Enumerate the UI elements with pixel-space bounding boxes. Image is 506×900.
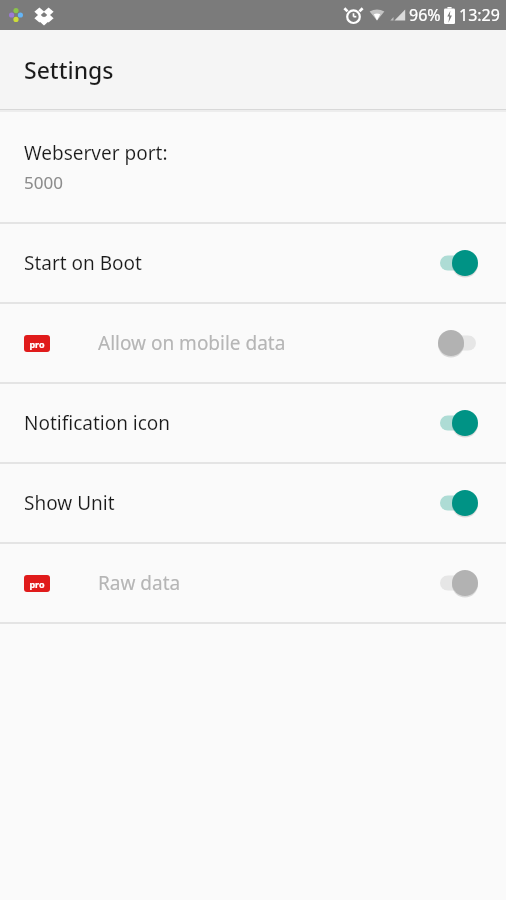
staticText: 5000 xyxy=(24,171,63,194)
button[interactable]: Notification icon xyxy=(0,384,506,462)
button[interactable]: Show Unit xyxy=(0,464,506,542)
staticText: Notification icon xyxy=(24,410,432,436)
button[interactable]: Off xyxy=(432,323,484,363)
button[interactable]: On xyxy=(432,563,484,603)
button[interactable]: On xyxy=(432,403,484,443)
staticText: 13:29 xyxy=(459,4,500,26)
button[interactable]: On xyxy=(432,243,484,283)
button[interactable]: On xyxy=(432,483,484,523)
staticText: Settings xyxy=(24,54,114,85)
staticText: pro xyxy=(29,578,45,590)
staticText: Start on Boot xyxy=(24,250,432,276)
button[interactable]: Webserver port: xyxy=(0,112,506,222)
button[interactable]: pro xyxy=(0,304,506,382)
staticText: Show Unit xyxy=(24,490,432,516)
staticText: Webserver port: xyxy=(24,140,168,166)
staticText: 96% xyxy=(409,4,441,26)
button[interactable]: Start on Boot xyxy=(0,224,506,302)
staticText: Allow on mobile data xyxy=(98,330,432,356)
staticText: Raw data xyxy=(98,570,432,596)
staticText: pro xyxy=(29,338,45,350)
button[interactable]: pro xyxy=(0,544,506,622)
